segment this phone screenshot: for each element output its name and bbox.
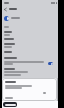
button[interactable]	[41, 91, 49, 95]
button[interactable]	[2, 37, 58, 42]
button[interactable]	[3, 102, 17, 107]
button[interactable]	[3, 7, 8, 12]
button[interactable]	[2, 30, 58, 37]
button[interactable]	[2, 25, 58, 30]
button[interactable]	[2, 67, 58, 77]
button[interactable]	[2, 15, 58, 23]
button[interactable]	[2, 50, 58, 55]
button[interactable]	[2, 42, 58, 49]
button[interactable]	[2, 56, 58, 67]
